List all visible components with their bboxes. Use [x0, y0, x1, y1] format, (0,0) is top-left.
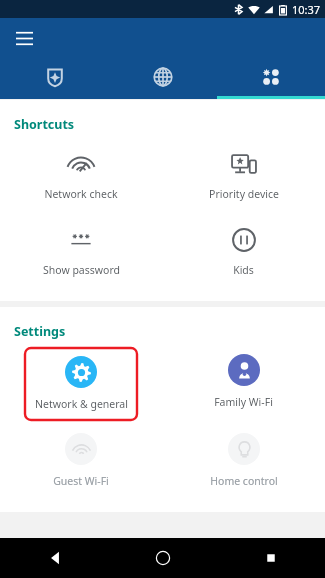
- staticText: Settings: [14, 323, 66, 340]
- button[interactable]: Kids: [162, 213, 325, 289]
- button[interactable]: Priority device: [162, 137, 325, 213]
- button[interactable]: Family Wi-Fi: [162, 344, 325, 419]
- staticText: Network check: [44, 187, 118, 201]
- button[interactable]: Home: [109, 538, 217, 578]
- button[interactable]: Guest Wi-Fi: [0, 423, 162, 498]
- staticText: Family Wi-Fi: [214, 395, 273, 409]
- staticText: Shortcuts: [14, 116, 75, 133]
- staticText: Network & general: [35, 397, 128, 411]
- button[interactable]: Recents: [217, 538, 325, 578]
- button[interactable]: Back: [0, 538, 109, 578]
- button[interactable]: Internet tab: [109, 58, 217, 96]
- button[interactable]: Security tab: [0, 58, 109, 96]
- staticText: Home control: [210, 474, 278, 488]
- staticText: Priority device: [209, 187, 279, 201]
- button[interactable]: Apps tab: [217, 58, 325, 96]
- button[interactable]: Home control: [162, 423, 325, 498]
- button[interactable]: Menu: [8, 22, 40, 54]
- staticText: 10:37: [292, 2, 321, 17]
- staticText: Guest Wi-Fi: [53, 474, 109, 488]
- button[interactable]: Show password: [0, 213, 162, 289]
- button[interactable]: Network & general: [27, 346, 135, 421]
- button[interactable]: Network check: [0, 137, 162, 213]
- staticText: Kids: [233, 263, 254, 277]
- staticText: Show password: [43, 263, 120, 277]
